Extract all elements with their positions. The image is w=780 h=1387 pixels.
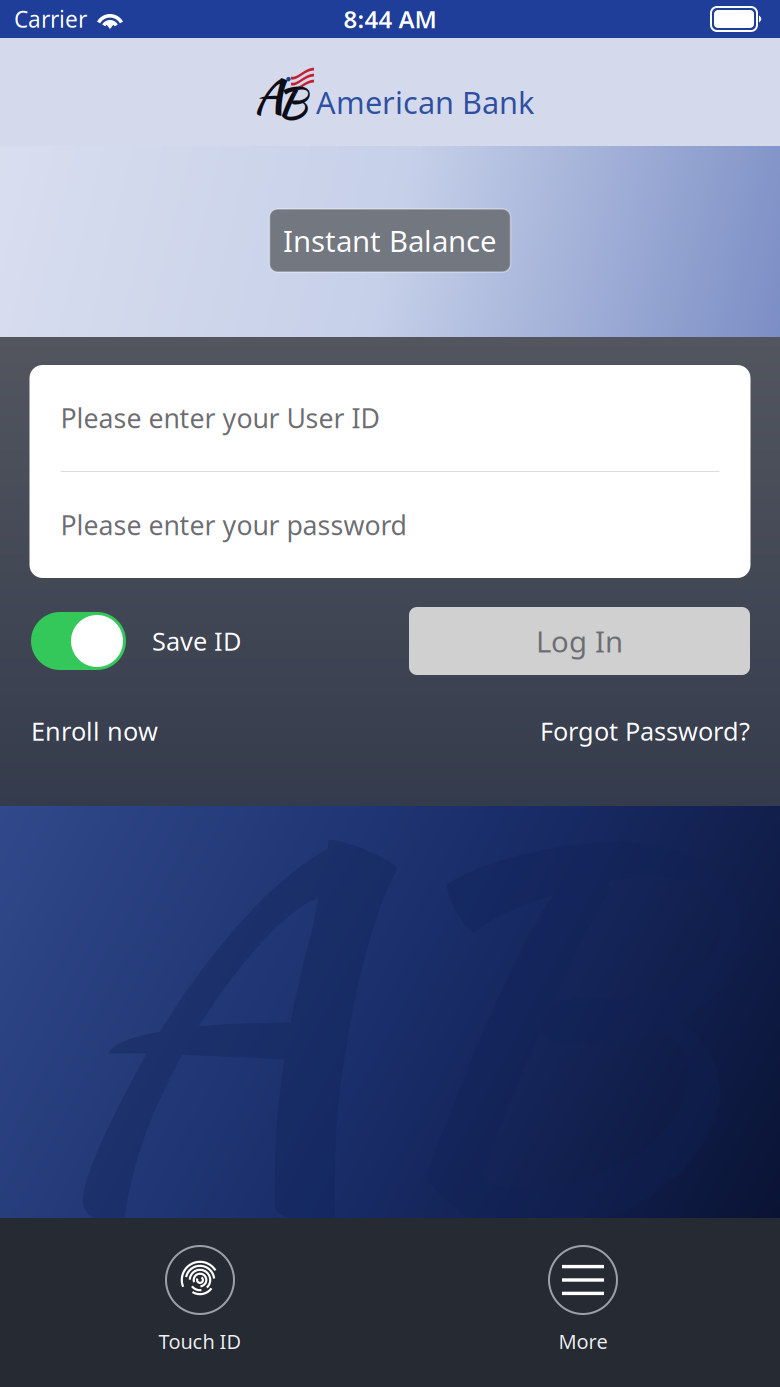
- staticText: More: [558, 1328, 607, 1355]
- staticText: 8:44 AM: [343, 3, 436, 35]
- staticText: Please enter your password: [60, 507, 406, 543]
- button[interactable]: Touch ID: [135, 1246, 265, 1355]
- staticText: B: [276, 71, 307, 133]
- button[interactable]: Enroll now: [31, 714, 158, 748]
- staticText: Log In: [536, 621, 623, 660]
- staticText: American Bank: [316, 82, 534, 122]
- staticText: Save ID: [152, 624, 241, 658]
- button[interactable]: Log In: [409, 607, 750, 675]
- button[interactable]: Forgot Password?: [540, 714, 750, 748]
- button[interactable]: More: [518, 1246, 648, 1355]
- staticText: Instant Balance: [283, 221, 497, 260]
- staticText: Please enter your User ID: [60, 400, 379, 436]
- staticText: Forgot Password?: [540, 714, 750, 748]
- staticText: AB: [53, 674, 706, 1370]
- staticText: Enroll now: [31, 714, 158, 748]
- staticText: Touch ID: [158, 1328, 241, 1355]
- button[interactable]: Save ID: [31, 612, 241, 670]
- staticText: Carrier: [14, 4, 87, 34]
- button[interactable]: Instant Balance: [269, 209, 510, 272]
- staticText: A: [254, 61, 284, 129]
